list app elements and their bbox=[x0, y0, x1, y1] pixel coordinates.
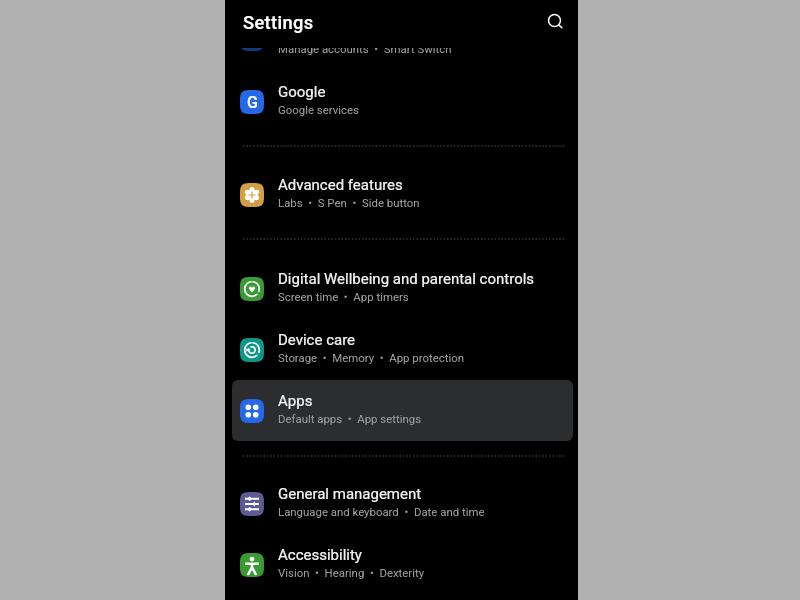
button[interactable]: Digital Wellbeing and parental controls bbox=[232, 258, 573, 319]
button[interactable]: Search bbox=[540, 6, 569, 35]
button[interactable]: Accessibility bbox=[232, 534, 573, 595]
staticText: Screen time • App timers bbox=[278, 290, 409, 303]
button[interactable]: General management bbox=[232, 473, 573, 534]
staticText: Storage • Memory • App protection bbox=[278, 351, 464, 364]
button[interactable]: Advanced features bbox=[232, 164, 573, 225]
staticText: Digital Wellbeing and parental controls bbox=[278, 270, 535, 288]
staticText: Accessibility bbox=[278, 546, 362, 564]
button[interactable]: G bbox=[232, 10, 573, 71]
staticText: Google services bbox=[278, 103, 359, 116]
staticText: Labs • S Pen • Side button bbox=[278, 196, 420, 209]
button[interactable]: Device care bbox=[232, 319, 573, 380]
staticText: General management bbox=[278, 485, 422, 503]
staticText: Apps bbox=[278, 392, 313, 410]
staticText: G bbox=[247, 93, 258, 112]
staticText: G bbox=[247, 30, 258, 49]
staticText: Settings bbox=[243, 12, 314, 33]
button[interactable]: G bbox=[232, 71, 573, 132]
staticText: Manage accounts bbox=[278, 22, 398, 40]
staticText: Language and keyboard • Date and time bbox=[278, 505, 485, 518]
button[interactable]: Apps bbox=[232, 380, 573, 441]
staticText: Device care bbox=[278, 331, 356, 349]
staticText: Advanced features bbox=[278, 176, 403, 194]
staticText: Vision • Hearing • Dexterity bbox=[278, 566, 425, 579]
staticText: Google bbox=[278, 83, 326, 101]
staticText: Default apps • App settings bbox=[278, 412, 422, 425]
staticText: Manage accounts • Smart Switch bbox=[278, 42, 452, 55]
